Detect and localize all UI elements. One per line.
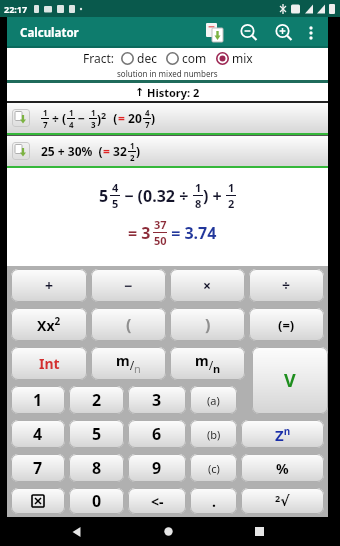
staticText: ) + xyxy=(203,185,226,207)
staticText: 8 xyxy=(92,457,102,479)
staticText: 2 xyxy=(92,389,102,411)
button[interactable]: Fract: xyxy=(7,48,328,80)
staticText: (c) xyxy=(208,461,220,476)
button[interactable]: . xyxy=(190,488,237,514)
button[interactable]: V xyxy=(252,347,328,414)
button[interactable] xyxy=(203,21,227,45)
button[interactable]: − xyxy=(91,269,166,302)
staticText: dec xyxy=(137,50,157,66)
staticText: ÷ ( xyxy=(49,110,67,126)
staticText: ) xyxy=(151,110,156,126)
button[interactable]: 5 xyxy=(69,420,124,448)
button[interactable]: <- xyxy=(128,488,186,514)
button[interactable]: 0 xyxy=(69,488,124,514)
staticText: (a) xyxy=(207,393,220,408)
staticText: Xx2 xyxy=(37,314,61,335)
button[interactable]: 1 xyxy=(11,386,65,414)
button[interactable]: Zn xyxy=(241,420,324,448)
staticText: − xyxy=(75,110,89,126)
staticText: 6 xyxy=(152,423,162,445)
staticText: 4 xyxy=(145,107,150,118)
staticText: 1 xyxy=(91,107,96,118)
staticText: % xyxy=(276,459,289,478)
staticText: 22:17 xyxy=(4,3,28,15)
staticText: (=) xyxy=(278,316,295,334)
staticText: 25 + 30% ( xyxy=(41,143,103,159)
button[interactable]: (b) xyxy=(190,420,237,448)
staticText: solution in mixed numbers xyxy=(117,68,218,79)
button[interactable]: m/n xyxy=(91,347,166,380)
staticText: 1 xyxy=(130,140,135,151)
staticText: m/n xyxy=(195,351,221,376)
staticText: 32 xyxy=(110,143,127,159)
button[interactable]: 3 xyxy=(128,386,186,414)
button[interactable]: 1 xyxy=(7,103,328,133)
staticText: 1 xyxy=(228,180,235,195)
button[interactable] xyxy=(153,517,183,546)
staticText: <- xyxy=(151,492,164,511)
staticText: 37 xyxy=(154,217,167,232)
staticText: 20 xyxy=(125,110,142,126)
button[interactable]: 2 xyxy=(69,386,124,414)
button[interactable]: 25 + 30% ( xyxy=(7,136,328,166)
staticText: 7 xyxy=(33,457,43,479)
staticText: 3 xyxy=(91,119,96,130)
staticText: ÷ xyxy=(282,276,291,295)
staticText: 1 xyxy=(69,107,74,118)
staticText: − xyxy=(124,276,133,295)
staticText: 7 xyxy=(145,119,150,130)
button[interactable]: 9 xyxy=(128,454,186,482)
staticText: . xyxy=(212,492,216,511)
button[interactable]: + xyxy=(11,269,87,302)
staticText: )2 xyxy=(97,109,107,127)
button[interactable]: m/n xyxy=(170,347,245,380)
staticText: 3 xyxy=(152,389,162,411)
staticText: = 3 xyxy=(128,222,151,244)
staticText: 7 xyxy=(43,119,48,130)
button[interactable] xyxy=(12,109,30,127)
staticText: mix xyxy=(232,50,253,66)
button[interactable]: ) xyxy=(170,308,245,341)
staticText: 8 xyxy=(195,196,202,211)
button[interactable] xyxy=(244,517,274,546)
button[interactable]: 6 xyxy=(128,420,186,448)
staticText: = xyxy=(103,143,110,159)
staticText: + xyxy=(45,276,54,295)
staticText: 1 xyxy=(43,107,48,118)
button[interactable] xyxy=(304,26,318,40)
button[interactable] xyxy=(11,488,65,514)
staticText: 5 xyxy=(112,196,119,211)
button[interactable]: (a) xyxy=(190,386,237,414)
staticText: Zn xyxy=(275,424,291,445)
button[interactable] xyxy=(12,142,30,160)
staticText: 50 xyxy=(154,233,167,248)
staticText: Calculator xyxy=(20,25,79,41)
button[interactable]: ( xyxy=(91,308,166,341)
staticText: History: 2 xyxy=(147,85,200,100)
button[interactable] xyxy=(238,22,260,44)
staticText: 1 xyxy=(195,180,202,195)
button[interactable]: Xx2 xyxy=(11,308,87,341)
button[interactable]: 7 xyxy=(11,454,65,482)
button[interactable]: 2√ xyxy=(241,488,324,514)
staticText: 9 xyxy=(152,457,162,479)
button[interactable]: 4 xyxy=(11,420,65,448)
staticText: 4 xyxy=(69,119,74,130)
staticText: V xyxy=(284,368,296,393)
button[interactable]: (=) xyxy=(249,308,324,341)
button[interactable] xyxy=(273,22,295,44)
staticText: (b) xyxy=(207,427,221,442)
button[interactable]: ÷ xyxy=(249,269,324,302)
button[interactable] xyxy=(62,517,92,546)
staticText: 2 xyxy=(228,196,235,211)
staticText: ( xyxy=(126,314,132,336)
button[interactable]: 8 xyxy=(69,454,124,482)
button[interactable]: Int xyxy=(11,347,87,380)
staticText: Fract: xyxy=(83,50,114,66)
staticText: 2√ xyxy=(275,492,290,510)
staticText: com xyxy=(182,50,207,66)
button[interactable]: × xyxy=(170,269,245,302)
button[interactable]: % xyxy=(241,454,324,482)
button[interactable]: (c) xyxy=(190,454,237,482)
staticText: 5 xyxy=(92,423,102,445)
